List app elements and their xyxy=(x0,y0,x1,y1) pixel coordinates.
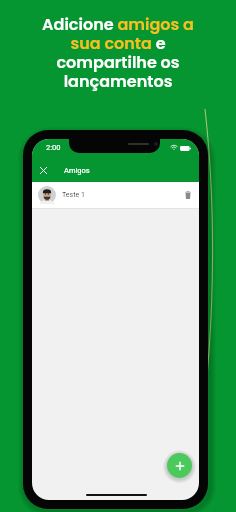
staticText: 2:00 xyxy=(46,143,61,152)
button[interactable]: Teste 1 xyxy=(32,182,199,208)
staticText: Adicione amigos a sua conta e compartilh… xyxy=(42,13,194,92)
staticText: Amigos xyxy=(64,166,90,175)
button[interactable]: Delete xyxy=(181,188,195,202)
button[interactable]: Add xyxy=(167,453,192,478)
button[interactable]: Close xyxy=(33,160,54,181)
staticText: Teste 1 xyxy=(62,191,85,199)
